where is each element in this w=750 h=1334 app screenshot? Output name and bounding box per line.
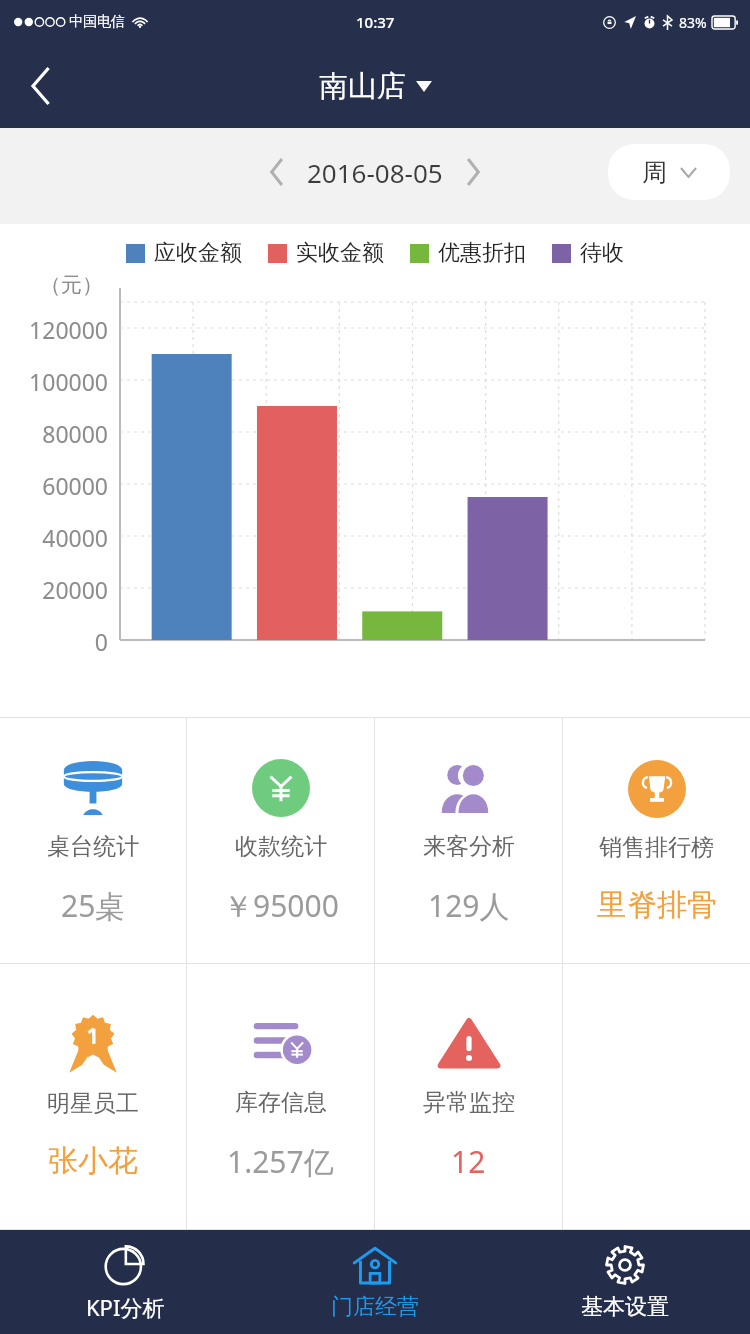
- button[interactable]: 门店经营: [250, 1230, 500, 1334]
- staticText: 周: [642, 157, 667, 188]
- staticText: 实收金额: [296, 239, 384, 267]
- button[interactable]: Previous date: [253, 148, 301, 196]
- staticText: ￥95000: [223, 885, 339, 926]
- staticText: 库存信息: [235, 1088, 327, 1117]
- staticText: 80000: [0, 418, 108, 449]
- button[interactable]: 库存信息: [187, 964, 374, 1229]
- staticText: 中国电信: [69, 13, 125, 31]
- staticText: 60000: [0, 470, 108, 501]
- staticText: 1.257亿: [227, 1141, 334, 1182]
- staticText: 销售排行榜: [599, 833, 714, 862]
- button[interactable]: 南山店: [319, 68, 432, 105]
- button[interactable]: 明星员工: [0, 964, 186, 1229]
- staticText: 83%: [679, 13, 707, 32]
- staticText: 优惠折扣: [438, 239, 526, 267]
- staticText: 桌台统计: [47, 832, 139, 861]
- staticText: 100000: [0, 366, 108, 397]
- staticText: 25桌: [61, 885, 126, 926]
- staticText: 明星员工: [47, 1089, 139, 1118]
- button[interactable]: Back: [10, 55, 72, 117]
- staticText: 12: [451, 1141, 486, 1182]
- button[interactable]: 异常监控: [375, 964, 562, 1229]
- staticText: 129人: [428, 885, 510, 926]
- staticText: 张小花: [48, 1142, 138, 1180]
- button[interactable]: 收款统计: [187, 718, 374, 963]
- staticText: 40000: [0, 522, 108, 553]
- staticText: 20000: [0, 574, 108, 605]
- staticText: （元）: [40, 272, 103, 298]
- button[interactable]: Next date: [449, 148, 497, 196]
- button[interactable]: 周: [608, 144, 730, 200]
- staticText: 来客分析: [423, 832, 515, 861]
- staticText: 基本设置: [581, 1293, 669, 1321]
- button[interactable]: 2016-08-05: [307, 155, 443, 190]
- button[interactable]: 来客分析: [375, 718, 562, 963]
- staticText: 门店经营: [331, 1293, 419, 1321]
- staticText: 收款统计: [235, 832, 327, 861]
- staticText: 里脊排骨: [597, 886, 717, 924]
- staticText: 南山店: [319, 68, 406, 105]
- staticText: 120000: [0, 314, 108, 345]
- staticText: 应收金额: [154, 239, 242, 267]
- button[interactable]: 桌台统计: [0, 718, 186, 963]
- staticText: KPI分析: [86, 1292, 165, 1322]
- staticText: 0: [0, 626, 108, 657]
- button[interactable]: KPI分析: [0, 1230, 250, 1334]
- staticText: 待收: [580, 239, 624, 267]
- button[interactable]: 基本设置: [500, 1230, 750, 1334]
- button[interactable]: 销售排行榜: [563, 718, 750, 963]
- staticText: 10:37: [356, 12, 395, 32]
- staticText: 异常监控: [423, 1088, 515, 1117]
